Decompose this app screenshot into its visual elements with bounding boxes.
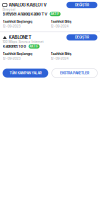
staticText: Kablonet 100 [3, 44, 27, 49]
staticText: Taahhüt Bitiş [51, 19, 72, 24]
staticText: 12-09-2023 [3, 56, 21, 60]
staticText: EKSTRA PAKETLER [60, 71, 89, 75]
staticText: AKTİF [51, 12, 60, 16]
button[interactable]: TÜM KAMPANYALAR [3, 69, 48, 78]
staticText: 12-09-2024 [51, 24, 69, 28]
staticText: 12-09-2024 [51, 56, 69, 60]
staticText: ANALOG KABLOTV [9, 2, 47, 8]
staticText: TÜM KAMPANYALAR [9, 71, 41, 75]
staticText: 12-09-2023 [3, 24, 21, 28]
staticText: Taahhüt Bitiş [51, 52, 72, 56]
staticText: DEĞİŞTİR [75, 3, 89, 7]
staticText: Taahhüt Başlangıç [3, 19, 33, 24]
staticText: Bireysel Analog Kablo TV [3, 12, 48, 16]
staticText: DEĞİŞTİR [75, 35, 89, 39]
staticText: AKTİF [30, 45, 39, 48]
staticText: Bireysel [3, 8, 16, 11]
staticText: KABLONET [9, 35, 32, 40]
staticText: 100 Mbps Sınırsız İnternet [3, 40, 44, 44]
staticText: Taahhüt Başlangıç [3, 52, 33, 56]
button[interactable]: DEĞİŞTİR [66, 34, 97, 40]
button[interactable]: DEĞİŞTİR [66, 2, 97, 8]
button[interactable]: EKSTRA PAKETLER [52, 69, 97, 78]
